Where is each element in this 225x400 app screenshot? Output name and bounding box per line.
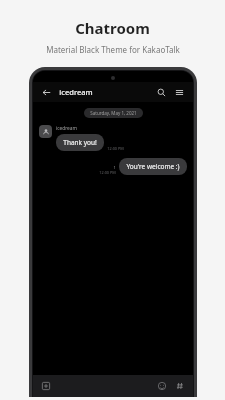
staticText: Thank you! [63,138,97,147]
button[interactable]: Search [155,86,168,99]
staticText: icedream [59,87,93,97]
button[interactable]: Thank you! [56,134,104,151]
button[interactable]: Emoji [156,380,168,392]
staticText: icedream [56,125,77,132]
staticText: Material Black Theme for KakaoTalk [46,44,180,55]
staticText: 12:00 PM [99,170,116,175]
staticText: 12:00 PM [107,146,124,151]
button[interactable]: Back [40,86,53,99]
staticText: Chatroom [75,18,150,38]
button[interactable]: Hashtag [174,380,186,392]
staticText: 1 [113,165,116,170]
staticText: Saturday, May 1, 2021 [90,110,137,116]
staticText: You're welcome :) [126,162,180,171]
button[interactable]: Profile picture [39,125,52,138]
button[interactable]: Menu [173,86,186,99]
button[interactable]: Add attachment [40,380,52,392]
button[interactable]: You're welcome :) [119,158,187,175]
